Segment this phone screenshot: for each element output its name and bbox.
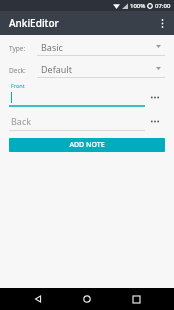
staticText: 07:00 [155,2,171,10]
button[interactable]: Type: [9,41,165,56]
staticText: ADD NOTE [69,140,105,150]
button[interactable]: Home [76,288,98,310]
button[interactable]: More options [150,11,174,35]
button[interactable]: Front [9,82,145,107]
staticText: Type: [9,44,37,53]
staticText: AnkiEditor [9,16,59,30]
button[interactable]: Back field options [145,111,165,131]
button[interactable]: ADD NOTE [9,138,165,152]
staticText: Deck: [9,66,37,75]
button[interactable]: Front field options [145,87,165,107]
button[interactable]: Back [27,288,49,310]
staticText: 100% [130,2,146,10]
button[interactable]: Deck: [9,63,165,78]
staticText: Basic [41,41,156,53]
staticText: Default [41,63,156,75]
button[interactable]: Back [9,115,145,131]
button[interactable]: Recent apps [125,288,147,310]
staticText: Back [11,115,32,127]
staticText: Front [11,82,25,89]
